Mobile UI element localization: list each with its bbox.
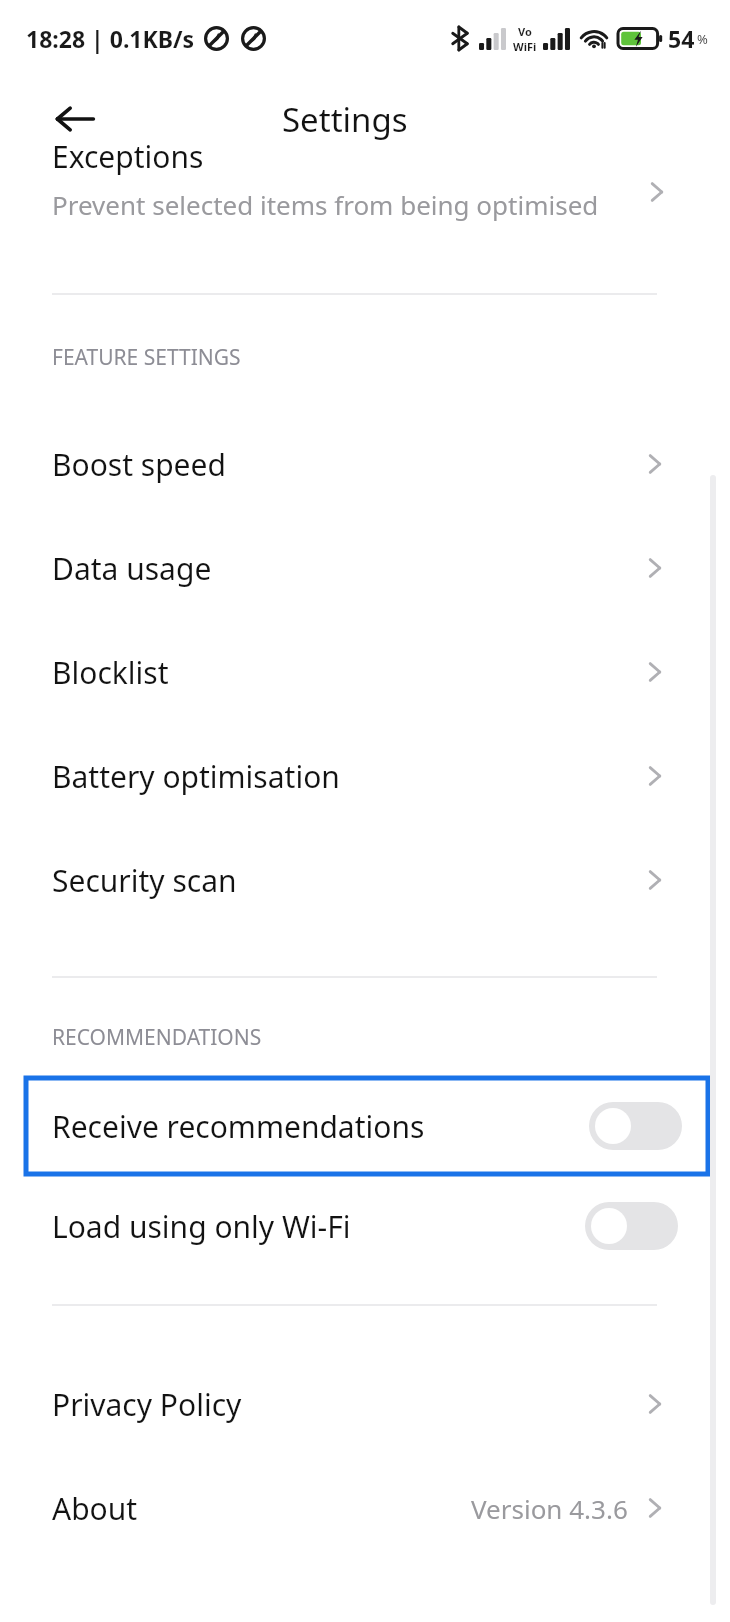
staticText: % xyxy=(697,30,708,48)
button[interactable]: Privacy Policy xyxy=(0,1352,730,1456)
button[interactable]: Load using only Wi-Fi xyxy=(0,1174,730,1278)
staticText: Exceptions xyxy=(52,136,204,177)
button[interactable]: Back xyxy=(44,88,106,150)
staticText: Prevent selected items from being optimi… xyxy=(52,187,599,222)
staticText: FEATURE SETTINGS xyxy=(52,343,241,372)
staticText: Vo xyxy=(518,24,532,39)
staticText: 54 xyxy=(668,23,695,54)
button[interactable]: Boost speed xyxy=(0,412,730,516)
staticText: Battery optimisation xyxy=(52,756,340,797)
staticText: Settings xyxy=(282,97,408,142)
button[interactable]: Blocklist xyxy=(0,620,730,724)
staticText: Version 4.3.6 xyxy=(471,1491,628,1526)
staticText: Blocklist xyxy=(52,652,169,693)
staticText: Boost speed xyxy=(52,444,226,485)
staticText: Load using only Wi-Fi xyxy=(52,1206,351,1247)
staticText: Security scan xyxy=(52,860,237,901)
button[interactable]: Battery optimisation xyxy=(0,724,730,828)
staticText: Data usage xyxy=(52,548,212,589)
button[interactable]: Security scan xyxy=(0,828,730,932)
staticText: Privacy Policy xyxy=(52,1384,242,1425)
staticText: RECOMMENDATIONS xyxy=(52,1023,262,1052)
staticText: WiFi xyxy=(513,39,537,54)
staticText: 18:28 | 0.1KB/s xyxy=(26,23,195,54)
staticText: Receive recommendations xyxy=(52,1106,425,1147)
button[interactable]: Receive recommendations xyxy=(26,1078,708,1174)
button[interactable]: Exceptions xyxy=(0,136,730,222)
button[interactable]: Data usage xyxy=(0,516,730,620)
button[interactable]: About xyxy=(0,1456,730,1560)
staticText: About xyxy=(52,1488,138,1529)
